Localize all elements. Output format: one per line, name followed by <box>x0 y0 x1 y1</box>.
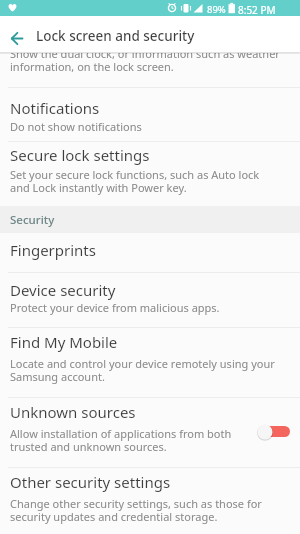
staticText: Set your secure lock functions, such as … <box>10 167 295 195</box>
staticText: Protect your device from malicious apps. <box>10 300 295 315</box>
staticText: 8:52 PM <box>238 3 276 17</box>
staticText: Unknown sources <box>10 402 136 422</box>
button[interactable]: Secure lock settings <box>0 142 300 206</box>
staticText: Locate and control your device remotely … <box>10 356 295 384</box>
staticText: Secure lock settings <box>10 145 150 165</box>
staticText: Notifications <box>10 98 100 118</box>
button[interactable]: Unknown sources <box>0 397 300 467</box>
staticText: Device security <box>10 280 116 300</box>
staticText: Fingerprints <box>10 240 96 260</box>
button[interactable]: Find My Mobile <box>0 327 300 397</box>
button[interactable]: Notifications <box>0 88 300 141</box>
button[interactable]: Device security <box>0 272 300 327</box>
staticText: 89% <box>207 3 226 16</box>
button[interactable]: Fingerprints <box>0 233 300 272</box>
staticText: Security <box>10 212 55 228</box>
staticText: Other security settings <box>10 472 171 492</box>
staticText: Change other security settings, such as … <box>10 496 295 524</box>
button[interactable] <box>0 16 34 52</box>
staticText: Find My Mobile <box>10 332 118 352</box>
staticText: Allow installation of applications from … <box>10 426 240 454</box>
staticText: Do not show notifications <box>10 119 295 134</box>
staticText: Show the dual clock, or information such… <box>10 52 280 74</box>
staticText: Lock screen and security <box>36 27 195 45</box>
button[interactable]: Other security settings <box>0 467 300 534</box>
